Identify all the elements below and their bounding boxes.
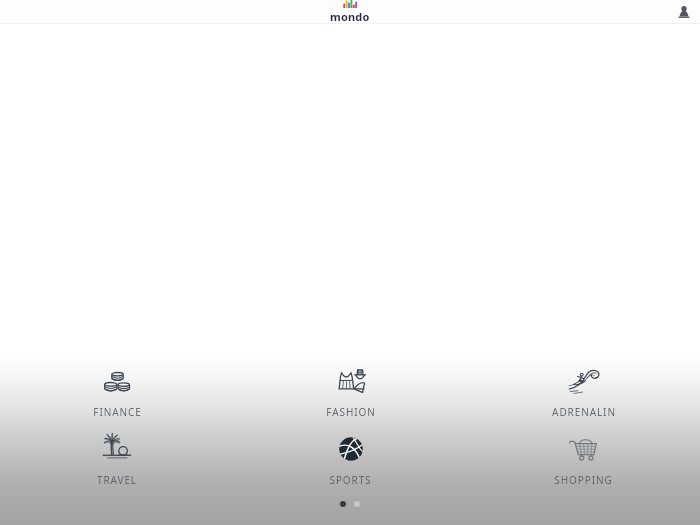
button[interactable]: Sports [234,427,467,491]
staticText: ADRENALIN [552,405,616,419]
staticText: FASHION [326,405,376,419]
button[interactable]: Profile [673,1,695,23]
button[interactable]: Finance [0,359,234,423]
button[interactable]: mondo [330,0,370,24]
button[interactable]: Page 2 [354,501,360,507]
staticText: FINANCE [93,405,142,419]
staticText: TRAVEL [97,473,137,487]
button[interactable]: Travel [0,427,234,491]
button[interactable]: Shopping [467,427,700,491]
staticText: SHOPPING [554,473,613,487]
staticText: mondo [330,9,370,24]
button[interactable]: Adrenalin [467,359,700,423]
button[interactable]: Page 1 [340,501,346,507]
staticText: SPORTS [329,473,372,487]
button[interactable]: Fashion [234,359,467,423]
